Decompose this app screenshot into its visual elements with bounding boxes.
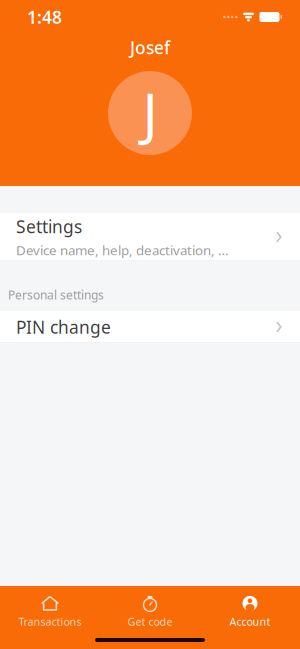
staticText: Account xyxy=(229,614,270,629)
staticText: PIN change xyxy=(16,315,111,338)
button[interactable]: Get code xyxy=(100,592,200,632)
staticText: Settings xyxy=(16,215,82,238)
staticText: Device name, help, deactivation, … xyxy=(16,241,229,259)
button[interactable]: Settings xyxy=(0,213,300,261)
staticText: 1:48 xyxy=(27,5,62,28)
staticText: Josef xyxy=(130,36,170,59)
button[interactable]: PIN change xyxy=(0,311,300,343)
staticText: J xyxy=(142,76,157,150)
staticText: Personal settings xyxy=(8,287,104,303)
button[interactable]: Account xyxy=(200,592,300,632)
staticText: Get code xyxy=(127,614,172,629)
staticText: Transactions xyxy=(18,614,81,629)
button[interactable]: Transactions xyxy=(0,592,100,632)
